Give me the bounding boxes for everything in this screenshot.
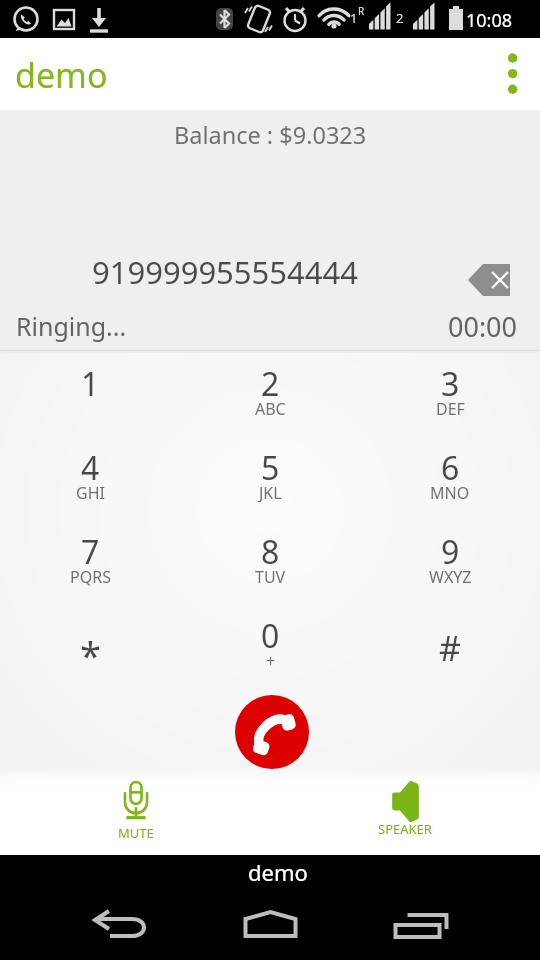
button[interactable]: * (0, 603, 180, 687)
staticText: 919999955554444 (92, 251, 358, 293)
button[interactable]: # (360, 603, 540, 687)
staticText: WXYZ (429, 566, 472, 588)
staticText: GHI (76, 482, 105, 504)
staticText: 1 (350, 9, 358, 27)
staticText: PQRS (70, 566, 111, 588)
button[interactable]: 3 (360, 351, 540, 435)
staticText: + (266, 650, 276, 672)
staticText: # (439, 625, 461, 671)
button[interactable]: 0 (180, 603, 360, 687)
staticText: 2 (396, 9, 404, 27)
staticText: 5 (261, 446, 280, 490)
staticText: 6 (441, 446, 460, 490)
staticText: 9 (441, 530, 460, 574)
button[interactable]: 7 (0, 519, 180, 603)
staticText: JKL (259, 482, 282, 504)
staticText: Ringing... (16, 309, 127, 343)
button[interactable]: End call (235, 695, 309, 769)
staticText: 1 (81, 362, 100, 406)
staticText: demo (248, 857, 308, 887)
button[interactable]: 5 (180, 435, 360, 519)
staticText: TUV (255, 566, 286, 588)
staticText: 2 (261, 362, 280, 406)
button[interactable]: 9 (360, 519, 540, 603)
staticText: MNO (430, 482, 470, 504)
button[interactable]: Home (220, 903, 320, 953)
button[interactable]: MUTE (86, 775, 186, 855)
staticText: 4 (81, 446, 100, 490)
staticText: 3 (441, 362, 460, 406)
button[interactable]: 4 (0, 435, 180, 519)
staticText: 00:00 (448, 308, 518, 345)
staticText: * (80, 629, 101, 681)
button[interactable]: SPEAKER (355, 775, 455, 855)
staticText: R (358, 4, 365, 18)
staticText: Balance : $9.0323 (174, 119, 367, 151)
staticText: MUTE (118, 824, 154, 842)
button[interactable]: 1 (0, 351, 180, 435)
staticText: ABC (255, 398, 286, 420)
staticText: SPEAKER (378, 820, 432, 838)
button[interactable]: 8 (180, 519, 360, 603)
button[interactable]: 6 (360, 435, 540, 519)
staticText: 8 (261, 530, 280, 574)
button[interactable]: More options (484, 38, 540, 110)
button[interactable]: 2 (180, 351, 360, 435)
staticText: 7 (81, 530, 100, 574)
button[interactable]: Recents (372, 903, 472, 953)
staticText: 10:08 (466, 8, 513, 33)
staticText: 0 (261, 614, 280, 658)
button[interactable]: Back (69, 903, 169, 953)
button[interactable]: Backspace (468, 264, 510, 296)
staticText: demo (15, 52, 108, 98)
staticText: DEF (436, 398, 465, 420)
